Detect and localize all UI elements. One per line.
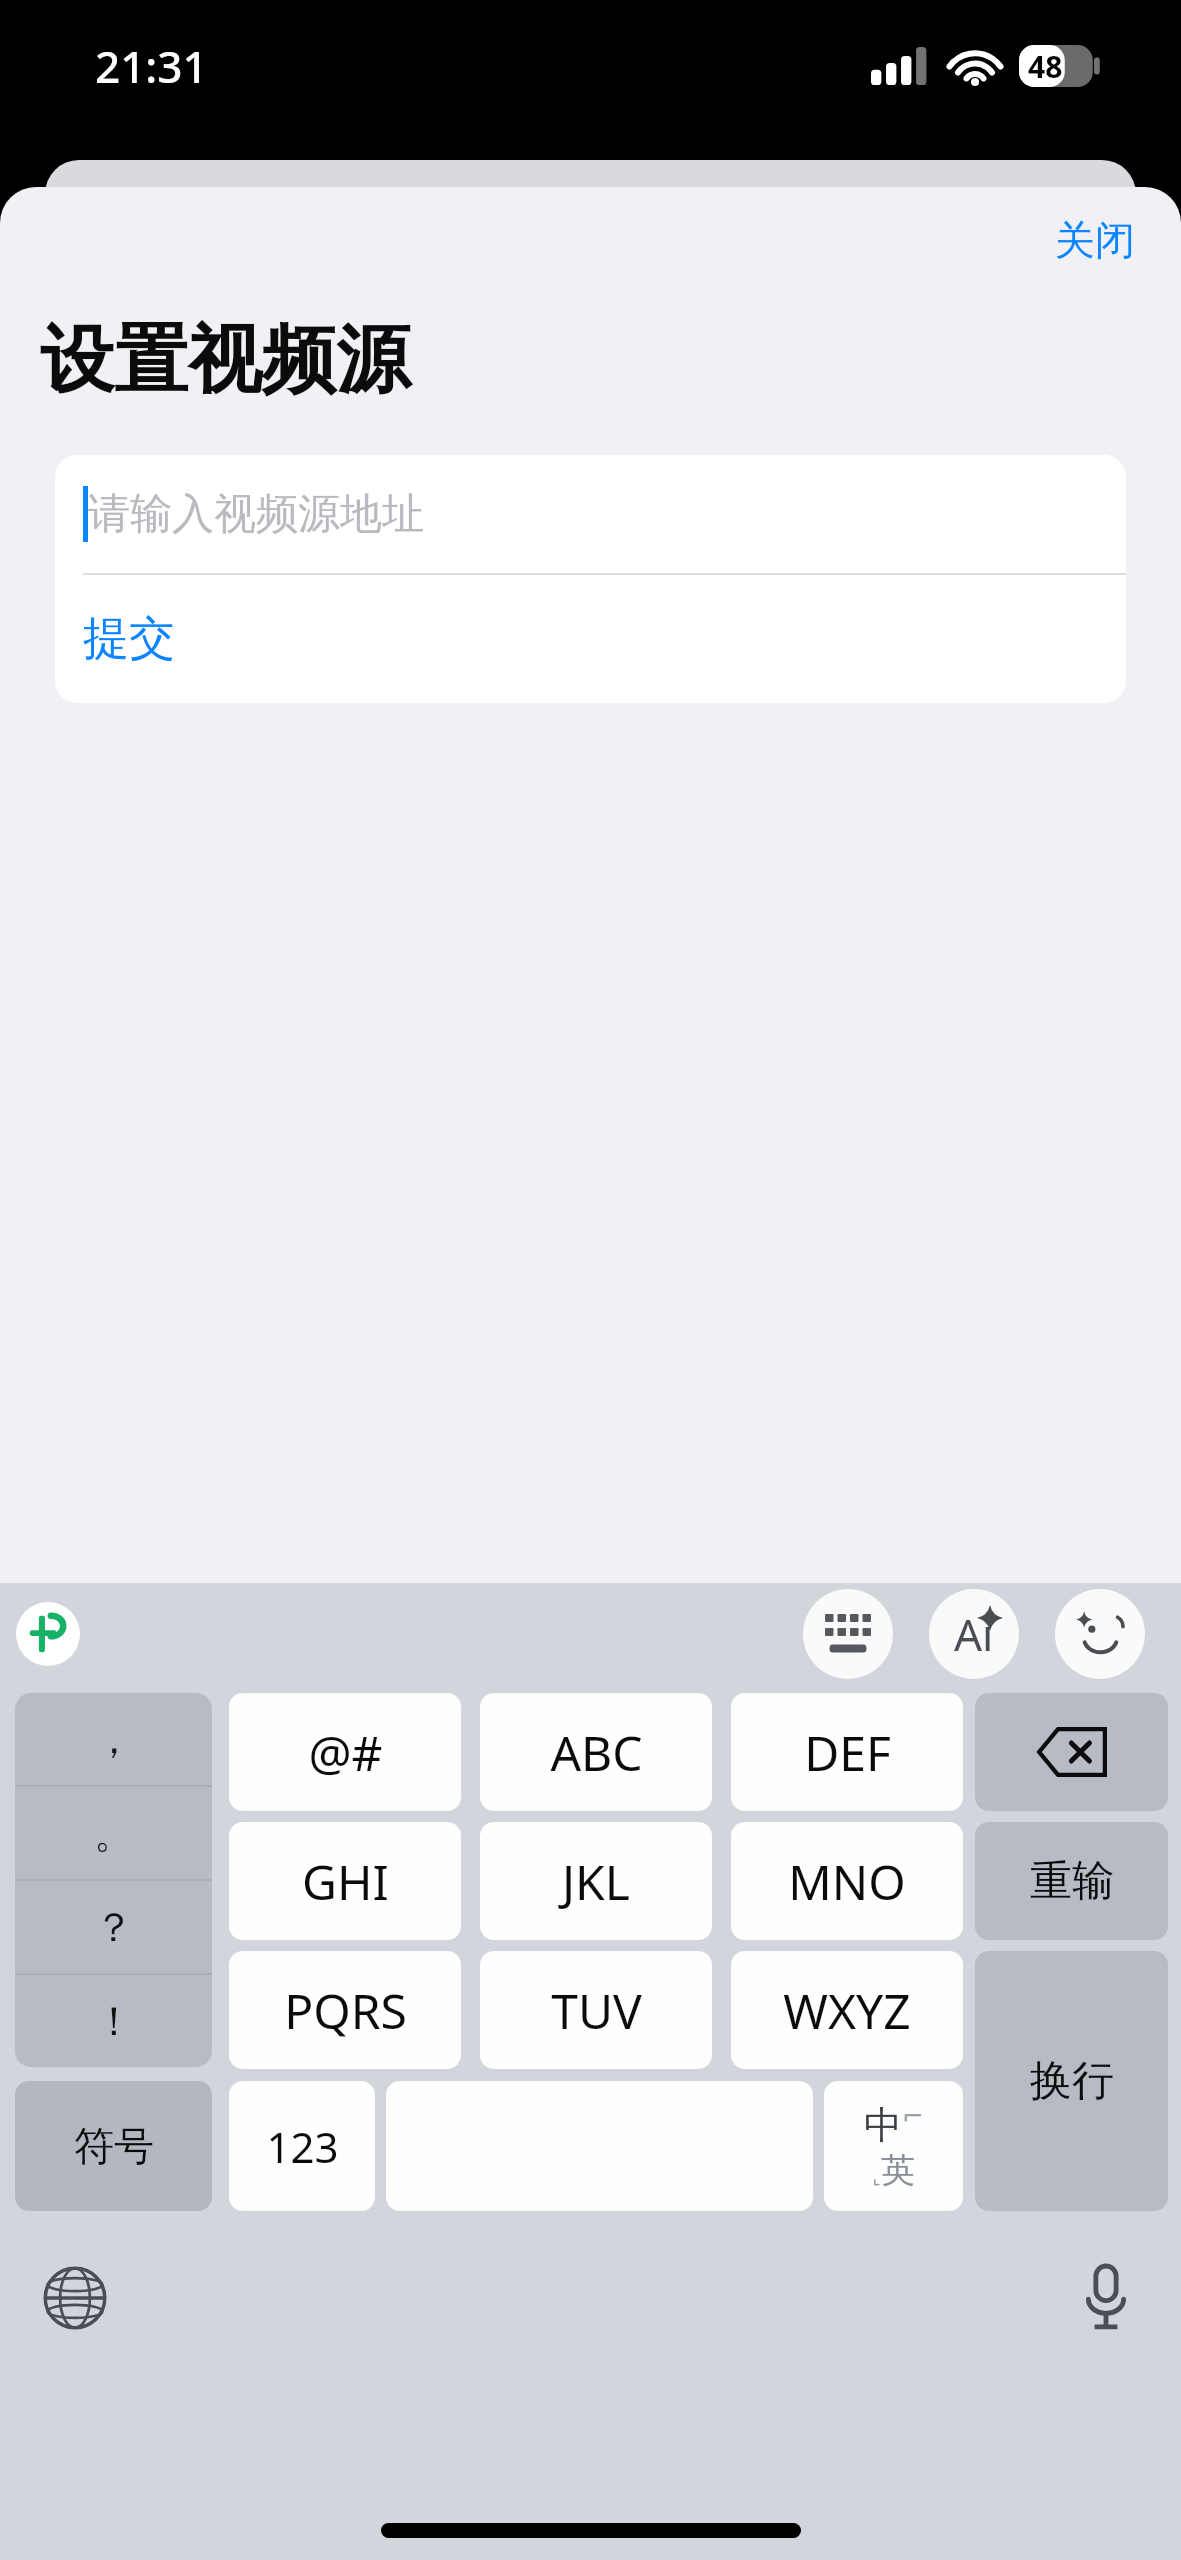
button[interactable]: MNO — [731, 1822, 963, 1940]
staticText: ！ — [94, 1996, 134, 2046]
button[interactable]: Keyboard layout — [803, 1589, 893, 1679]
staticText: MNO — [788, 1849, 906, 1914]
button[interactable]: ？ — [15, 1881, 212, 1973]
button[interactable]: 关闭 — [1045, 209, 1145, 271]
button[interactable]: Voice input — [1063, 2255, 1149, 2341]
button[interactable]: PQRS — [229, 1951, 461, 2069]
staticText: @# — [308, 1720, 383, 1785]
button[interactable]: GHI — [229, 1822, 461, 1940]
staticText: 123 — [266, 2118, 339, 2175]
button[interactable]: 提交 — [55, 575, 1126, 703]
staticText: 设置视频源 — [40, 314, 410, 407]
staticText: ⌐ — [902, 2101, 924, 2131]
button[interactable]: JKL — [480, 1822, 712, 1940]
staticText: ？ — [94, 1902, 134, 1952]
button[interactable]: @# — [229, 1693, 461, 1811]
staticText: DEF — [804, 1720, 891, 1785]
staticText: 符号 — [74, 2121, 154, 2171]
button[interactable]: TUV — [480, 1951, 712, 2069]
staticText: 48 — [1028, 46, 1063, 87]
staticText: ABC — [550, 1720, 643, 1785]
staticText: JKL — [562, 1849, 630, 1914]
button[interactable]: 请输入视频源地址 — [55, 455, 1126, 573]
button[interactable]: ， — [15, 1693, 212, 1785]
button[interactable]: Input method logo — [16, 1602, 80, 1666]
button[interactable]: Chinese English toggle — [824, 2081, 963, 2211]
staticText: 21:31 — [95, 36, 208, 96]
staticText: 换行 — [1030, 2055, 1114, 2108]
button[interactable]: ！ — [15, 1975, 212, 2067]
button[interactable]: 。 — [15, 1787, 212, 1879]
staticText: 中 — [864, 2101, 902, 2149]
staticText: 。 — [94, 1808, 134, 1858]
staticText: ˻ — [873, 2157, 881, 2192]
button[interactable]: Backspace — [975, 1693, 1168, 1811]
button[interactable]: 符号 — [15, 2081, 212, 2211]
staticText: 英 — [881, 2149, 915, 2192]
staticText: 提交 — [83, 610, 175, 668]
staticText: ， — [94, 1714, 134, 1764]
button[interactable]: Emoji — [1055, 1589, 1145, 1679]
button[interactable]: ABC — [480, 1693, 712, 1811]
staticText: GHI — [302, 1849, 389, 1914]
button[interactable]: Switch language — [32, 2255, 118, 2341]
staticText: 重输 — [1030, 1855, 1114, 1908]
button[interactable]: DEF — [731, 1693, 963, 1811]
button[interactable]: AI assistant — [929, 1589, 1019, 1679]
staticText: Ai — [954, 1604, 994, 1664]
staticText: 请输入视频源地址 — [88, 488, 424, 541]
staticText: 关闭 — [1055, 215, 1135, 265]
button[interactable]: 换行 — [975, 1951, 1168, 2211]
button[interactable]: 123 — [229, 2081, 375, 2211]
staticText: TUV — [551, 1978, 642, 2043]
button[interactable]: WXYZ — [731, 1951, 963, 2069]
staticText: WXYZ — [783, 1978, 911, 2043]
staticText: PQRS — [284, 1978, 407, 2043]
button[interactable]: 重输 — [975, 1822, 1168, 1940]
